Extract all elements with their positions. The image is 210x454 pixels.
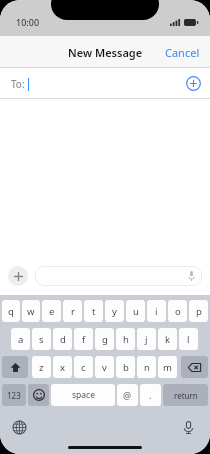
button[interactable]: n [137, 356, 156, 378]
button[interactable]: i [147, 300, 166, 322]
staticText: b [123, 361, 129, 374]
staticText: @ [123, 389, 132, 401]
button[interactable]: y [105, 300, 124, 322]
staticText: . [149, 389, 152, 401]
staticText: l [187, 333, 190, 346]
button[interactable]: Shift [2, 356, 28, 378]
staticText: h [123, 333, 129, 346]
button[interactable]: d [53, 328, 72, 350]
staticText: w [27, 305, 35, 318]
button[interactable]: v [95, 356, 114, 378]
staticText: return [174, 390, 198, 401]
staticText: d [60, 333, 66, 346]
button[interactable]: z [32, 356, 51, 378]
button[interactable]: Change keyboard [12, 420, 27, 435]
button[interactable]: Add attachment [8, 266, 28, 286]
button[interactable]: Add contact [186, 76, 201, 91]
staticText: e [49, 305, 55, 318]
button[interactable]: p [189, 300, 208, 322]
staticText: 10:00 [16, 16, 40, 28]
button[interactable]: f [74, 328, 93, 350]
button[interactable]: u [126, 300, 145, 322]
staticText: New Message [68, 45, 143, 60]
staticText: s [39, 333, 44, 346]
button[interactable]: Cancel [155, 38, 210, 67]
button[interactable]: r [63, 300, 82, 322]
button[interactable]: m [158, 356, 177, 378]
staticText: i [155, 305, 158, 318]
staticText: Cancel [165, 45, 200, 60]
staticText: t [92, 305, 96, 318]
button[interactable]: Emoji [28, 384, 49, 406]
staticText: q [8, 305, 14, 318]
button[interactable]: Dictation [181, 420, 196, 435]
button[interactable]: s [32, 328, 51, 350]
button[interactable] [35, 266, 202, 286]
button[interactable]: 123 [2, 384, 26, 406]
button[interactable]: . [140, 384, 161, 406]
staticText: v [102, 361, 107, 374]
button[interactable]: return [163, 384, 208, 406]
button[interactable]: x [53, 356, 72, 378]
button[interactable]: j [137, 328, 156, 350]
staticText: u [133, 305, 139, 318]
button[interactable]: h [116, 328, 135, 350]
button[interactable]: To: [0, 68, 210, 99]
staticText: o [175, 305, 181, 318]
button[interactable]: @ [117, 384, 138, 406]
staticText: c [81, 361, 86, 374]
button[interactable]: Delete [181, 356, 208, 378]
button[interactable]: c [74, 356, 93, 378]
button[interactable]: k [158, 328, 177, 350]
staticText: x [60, 361, 66, 374]
staticText: z [39, 361, 44, 374]
staticText: m [163, 361, 172, 374]
staticText: To: [11, 77, 25, 91]
staticText: 123 [7, 390, 21, 401]
staticText: space [72, 389, 95, 401]
staticText: r [71, 305, 75, 318]
staticText: n [144, 361, 150, 374]
staticText: a [18, 333, 24, 346]
staticText: y [112, 305, 117, 318]
button[interactable]: space [51, 384, 115, 406]
button[interactable]: a [11, 328, 30, 350]
button[interactable]: o [168, 300, 187, 322]
staticText: j [145, 333, 148, 346]
button[interactable]: e [42, 300, 61, 322]
button[interactable]: w [22, 300, 40, 322]
button[interactable]: b [116, 356, 135, 378]
staticText: k [165, 333, 171, 346]
button[interactable]: q [2, 300, 20, 322]
staticText: g [102, 333, 108, 346]
button[interactable]: l [179, 328, 198, 350]
button[interactable]: t [84, 300, 103, 322]
staticText: p [196, 305, 202, 318]
staticText: f [82, 333, 86, 346]
button[interactable]: g [95, 328, 114, 350]
